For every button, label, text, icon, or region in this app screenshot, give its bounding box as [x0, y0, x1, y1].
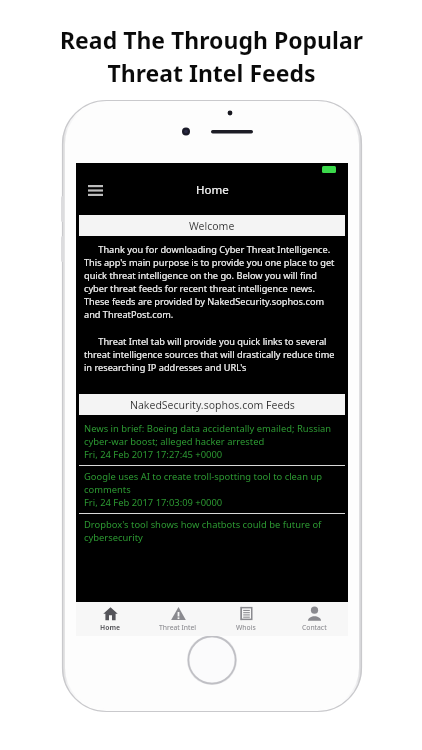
- staticText: Read The Through Popular: [60, 24, 363, 55]
- staticText: Dropbox's tool shows how chatbots could …: [84, 518, 340, 544]
- staticText: News in brief: Boeing data accidentally …: [84, 422, 340, 448]
- button[interactable]: Open navigation menu: [82, 177, 108, 203]
- button[interactable]: NakedSecurity.sophos.com Feeds: [79, 394, 345, 415]
- staticText: Threat Intel: [159, 623, 197, 632]
- staticText: Threat Intel Feeds: [107, 57, 316, 88]
- button[interactable]: Google uses AI to create troll-spotting …: [76, 466, 348, 513]
- button[interactable]: Home: [76, 602, 144, 636]
- button[interactable]: Whois: [212, 602, 280, 636]
- staticText: Google uses AI to create troll-spotting …: [84, 470, 340, 496]
- button[interactable]: Welcome: [79, 215, 345, 236]
- staticText: Fri, 24 Feb 2017 17:27:45 +0000: [84, 448, 223, 461]
- staticText: Welcome: [189, 219, 235, 233]
- staticText: Contact: [302, 623, 327, 632]
- button[interactable]: Dropbox's tool shows how chatbots could …: [76, 514, 348, 548]
- staticText: Thank you for downloading Cyber Threat I…: [84, 243, 340, 321]
- staticText: Whois: [236, 623, 256, 632]
- staticText: Threat Intel tab will provide you quick …: [84, 335, 340, 374]
- button[interactable]: Threat Intel: [144, 602, 212, 636]
- button[interactable]: News in brief: Boeing data accidentally …: [76, 418, 348, 465]
- staticText: Home: [100, 623, 121, 632]
- staticText: NakedSecurity.sophos.com Feeds: [130, 398, 295, 412]
- staticText: Fri, 24 Feb 2017 17:03:09 +0000: [84, 496, 223, 509]
- staticText: Home: [196, 182, 229, 198]
- button[interactable]: Contact: [280, 602, 348, 636]
